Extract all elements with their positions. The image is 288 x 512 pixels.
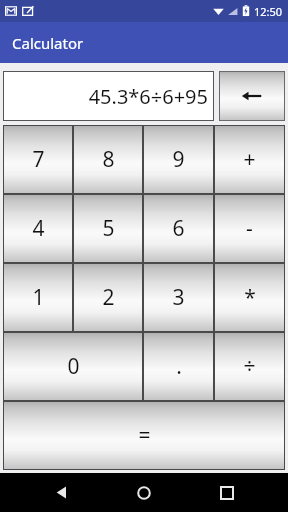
button[interactable]: 6: [143, 194, 214, 263]
button[interactable]: =: [3, 401, 285, 470]
staticText: 3: [172, 283, 185, 312]
staticText: +: [243, 145, 256, 174]
staticText: 5: [102, 214, 115, 243]
staticText: 0: [67, 352, 80, 381]
button[interactable]: 7: [3, 125, 73, 194]
button[interactable]: ÷: [214, 332, 285, 401]
staticText: .: [176, 352, 182, 381]
staticText: 1: [32, 283, 45, 312]
button[interactable]: Home: [122, 473, 166, 512]
button[interactable]: -: [214, 194, 285, 263]
button[interactable]: 1: [3, 263, 73, 332]
button[interactable]: 9: [143, 125, 214, 194]
staticText: *: [244, 283, 256, 312]
staticText: =: [138, 421, 151, 450]
button[interactable]: 8: [73, 125, 143, 194]
staticText: -: [246, 214, 253, 243]
button[interactable]: 0: [3, 332, 143, 401]
staticText: 8: [102, 145, 115, 174]
staticText: 12:50: [254, 4, 283, 19]
button[interactable]: Recent apps: [205, 473, 249, 512]
button[interactable]: Back: [39, 473, 83, 512]
button[interactable]: 45.3*6÷6+95: [3, 71, 214, 121]
staticText: ÷: [243, 352, 256, 381]
button[interactable]: Backspace: [219, 71, 285, 121]
button[interactable]: +: [214, 125, 285, 194]
button[interactable]: 2: [73, 263, 143, 332]
staticText: 9: [172, 145, 185, 174]
staticText: 7: [32, 145, 45, 174]
staticText: 4: [32, 214, 45, 243]
staticText: 45.3*6÷6+95: [88, 83, 208, 110]
button[interactable]: .: [143, 332, 214, 401]
staticText: 6: [172, 214, 185, 243]
button[interactable]: 5: [73, 194, 143, 263]
staticText: 2: [102, 283, 115, 312]
button[interactable]: *: [214, 263, 285, 332]
button[interactable]: 4: [3, 194, 73, 263]
staticText: Calculator: [12, 33, 84, 53]
button[interactable]: 3: [143, 263, 214, 332]
